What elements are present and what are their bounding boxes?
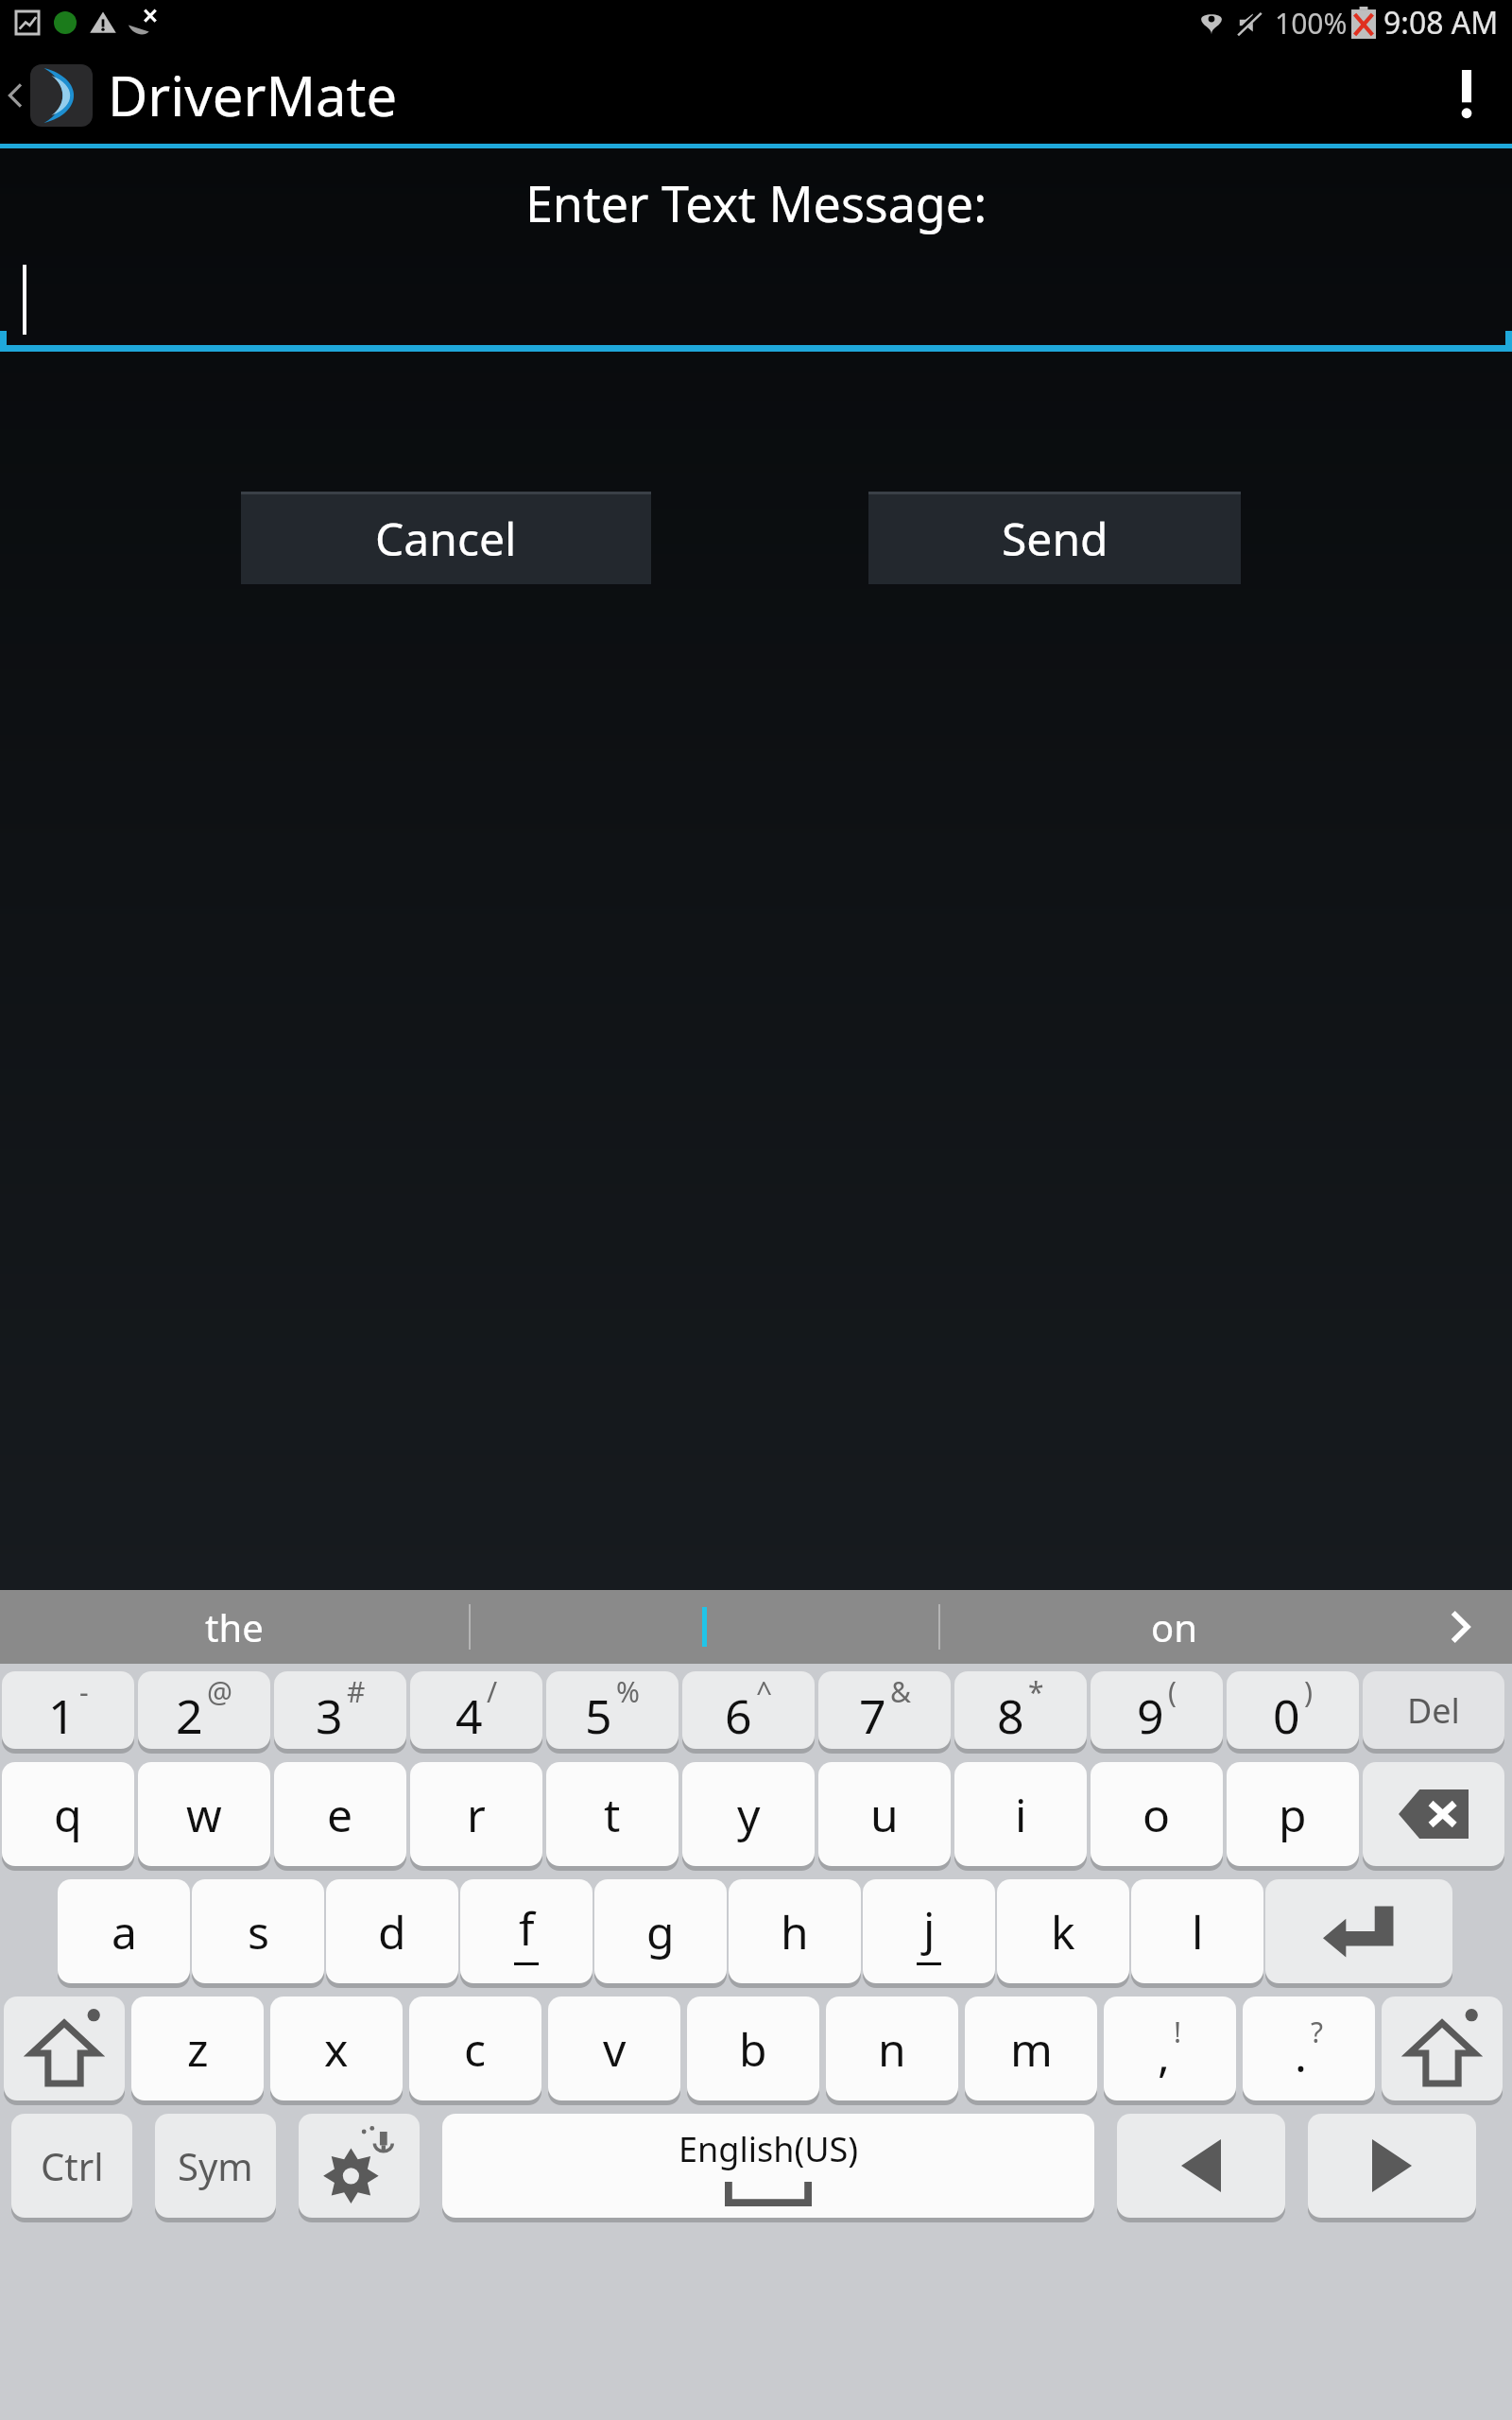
button[interactable]: j (863, 1879, 995, 1983)
button[interactable]: 0 (1227, 1671, 1359, 1749)
button[interactable]: r (410, 1762, 542, 1866)
button[interactable]: y (682, 1762, 815, 1866)
button[interactable]: Backspace (1363, 1762, 1504, 1866)
button[interactable]: c (409, 1996, 541, 2100)
staticText: e (327, 1784, 353, 1845)
button[interactable]: 1 (2, 1671, 134, 1749)
button[interactable]: 3 (274, 1671, 406, 1749)
button[interactable]: e (274, 1762, 406, 1866)
button[interactable]: o (1091, 1762, 1223, 1866)
button[interactable]: Move cursor right (1308, 2114, 1476, 2218)
staticText: ^ (756, 1672, 773, 1711)
button[interactable]: 8 (954, 1671, 1087, 1749)
staticText: m (1010, 2018, 1053, 2080)
staticText: p (1279, 1784, 1307, 1845)
button[interactable]: Ctrl (11, 2114, 132, 2218)
staticText: 9 (1137, 1684, 1164, 1748)
staticText: 5 (585, 1684, 612, 1748)
button[interactable]: w (138, 1762, 270, 1866)
button[interactable]: p (1227, 1762, 1359, 1866)
button[interactable]: 2 (138, 1671, 270, 1749)
button[interactable]: 6 (682, 1671, 815, 1749)
button[interactable] (471, 1590, 938, 1664)
button[interactable]: Cancel (241, 492, 651, 584)
staticText: the (205, 1601, 264, 1652)
staticText: ! (1174, 2013, 1182, 2051)
button[interactable]: Sym (155, 2114, 276, 2218)
button[interactable]: b (687, 1996, 819, 2100)
staticText: , (1158, 2024, 1170, 2085)
button[interactable]: the (0, 1590, 469, 1664)
staticText: / (487, 1672, 498, 1711)
button[interactable]: Keyboard settings and voice input (299, 2114, 420, 2218)
button[interactable]: 4 (410, 1671, 542, 1749)
staticText: Del (1407, 1687, 1460, 1734)
button[interactable]: d (326, 1879, 458, 1983)
staticText: r (467, 1784, 486, 1845)
staticText: j (923, 1897, 936, 1959)
button[interactable]: More suggestions (1408, 1590, 1512, 1664)
staticText: 8 (997, 1684, 1024, 1748)
button[interactable]: z (131, 1996, 264, 2100)
button[interactable]: g (594, 1879, 727, 1983)
button[interactable]: x (270, 1996, 403, 2100)
button[interactable]: on (940, 1590, 1408, 1664)
button[interactable]: Del (1363, 1671, 1504, 1749)
staticText: - (79, 1672, 89, 1711)
staticText: n (878, 2018, 906, 2080)
staticText: % (616, 1672, 640, 1711)
staticText: z (187, 2018, 209, 2080)
button[interactable]: . (1243, 1996, 1375, 2100)
staticText: d (378, 1901, 406, 1962)
button[interactable]: u (818, 1762, 951, 1866)
button[interactable]: s (192, 1879, 324, 1983)
staticText: # (347, 1672, 366, 1711)
button[interactable]: Shift (1382, 1996, 1503, 2100)
staticText: . (1295, 2024, 1307, 2085)
staticText: 1 (48, 1684, 76, 1748)
staticText: w (186, 1784, 222, 1845)
staticText: on (1151, 1601, 1197, 1652)
button[interactable]: m (965, 1996, 1097, 2100)
staticText: Cancel (375, 508, 517, 569)
button[interactable]: t (546, 1762, 679, 1866)
button[interactable]: Move cursor left (1117, 2114, 1285, 2218)
button[interactable]: n (826, 1996, 958, 2100)
button[interactable]: Enter (1265, 1879, 1452, 1983)
button[interactable]: 7 (818, 1671, 951, 1749)
staticText: ( (1168, 1672, 1177, 1711)
button[interactable]: v (548, 1996, 680, 2100)
staticText: ? (1311, 2013, 1324, 2051)
button[interactable] (0, 253, 1512, 352)
button[interactable]: Shift (4, 1996, 125, 2100)
button[interactable]: Alerts (1421, 45, 1512, 144)
button[interactable]: Send (868, 492, 1241, 584)
button[interactable]: q (2, 1762, 134, 1866)
staticText: 9:08 AM (1383, 2, 1499, 43)
staticText: f (519, 1897, 535, 1959)
staticText: 4 (455, 1684, 483, 1748)
staticText: ) (1304, 1672, 1313, 1711)
staticText: g (646, 1901, 675, 1962)
button[interactable]: , (1104, 1996, 1236, 2100)
staticText: u (870, 1784, 899, 1845)
staticText: @ (207, 1672, 232, 1711)
button[interactable]: h (729, 1879, 861, 1983)
staticText: b (739, 2018, 767, 2080)
staticText: 3 (316, 1684, 343, 1748)
button[interactable]: k (997, 1879, 1129, 1983)
button[interactable]: Space (442, 2114, 1094, 2218)
staticText: c (464, 2018, 487, 2080)
button[interactable]: f (460, 1879, 593, 1983)
staticText: DriverMate (108, 58, 398, 132)
button[interactable]: DriverMate (0, 58, 413, 132)
button[interactable]: a (58, 1879, 190, 1983)
button[interactable]: 9 (1091, 1671, 1223, 1749)
staticText: Enter Text Message: (0, 169, 1512, 236)
button[interactable]: i (954, 1762, 1087, 1866)
staticText: q (54, 1784, 82, 1845)
staticText: Sym (178, 2140, 253, 2191)
staticText: x (324, 2018, 349, 2080)
button[interactable]: 5 (546, 1671, 679, 1749)
button[interactable]: l (1131, 1879, 1263, 1983)
